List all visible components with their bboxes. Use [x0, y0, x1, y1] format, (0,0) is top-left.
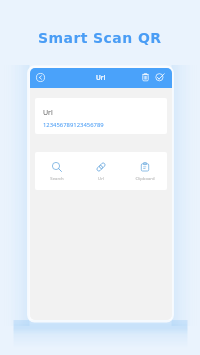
staticText: Clipboard	[135, 176, 155, 182]
button[interactable]: Url	[35, 98, 167, 134]
button[interactable]: Confirm	[154, 71, 166, 83]
staticText: Url	[43, 108, 53, 118]
staticText: Url	[96, 73, 106, 82]
button[interactable]: Delete	[139, 71, 151, 83]
staticText: Search	[50, 176, 64, 182]
staticText: Url	[98, 176, 104, 182]
staticText: 123456789123456789	[43, 121, 104, 129]
button[interactable]: Clipboard	[123, 152, 167, 190]
staticText: Smart Scan QR	[38, 30, 162, 46]
button[interactable]: Url	[79, 152, 123, 190]
button[interactable]: Back	[34, 71, 46, 83]
button[interactable]: Search	[35, 152, 79, 190]
